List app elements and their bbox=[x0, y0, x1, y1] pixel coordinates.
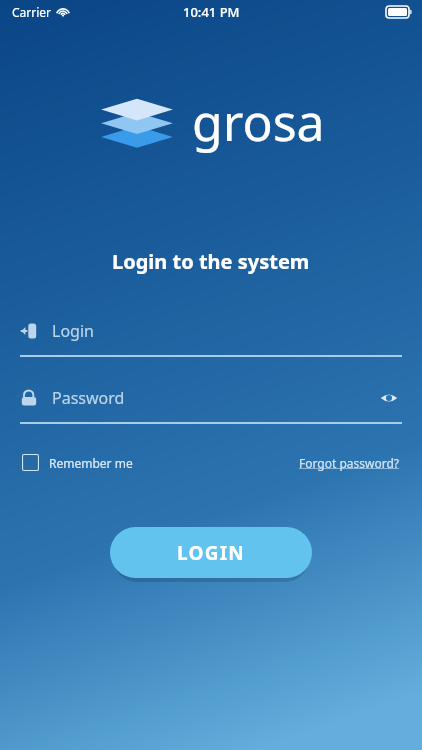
button[interactable]: Show password bbox=[376, 385, 402, 411]
button[interactable]: Login bbox=[20, 314, 402, 357]
button[interactable]: Password bbox=[20, 381, 402, 424]
staticText: grosa bbox=[192, 88, 325, 156]
button[interactable]: LOGIN bbox=[110, 527, 312, 578]
staticText: 10:41 PM bbox=[183, 3, 240, 21]
other: Login bbox=[20, 322, 38, 340]
button[interactable]: Forgot password? bbox=[297, 451, 402, 475]
staticText: LOGIN bbox=[177, 540, 245, 566]
staticText: Forgot password? bbox=[299, 455, 400, 471]
staticText: Carrier bbox=[12, 4, 52, 20]
other: Password bbox=[20, 389, 38, 407]
button[interactable]: Remember me bbox=[20, 450, 135, 475]
staticText: Login to the system bbox=[112, 248, 310, 275]
staticText: Login bbox=[52, 320, 94, 342]
staticText: Password bbox=[52, 387, 125, 409]
staticText: Remember me bbox=[49, 455, 133, 471]
